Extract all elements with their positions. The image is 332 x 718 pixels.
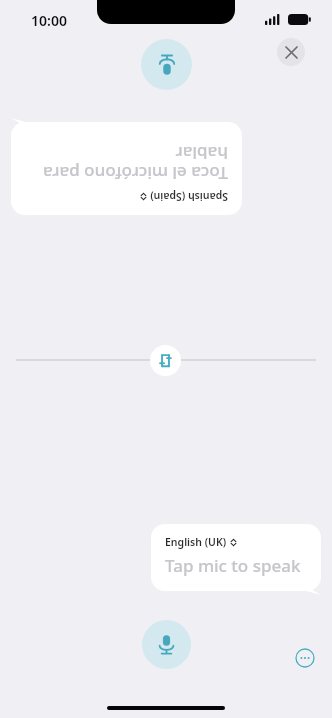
staticText: Spanish (Spain) bbox=[150, 190, 228, 204]
button[interactable]: English (UK) bbox=[165, 535, 237, 549]
staticText: 10:00 bbox=[31, 11, 67, 30]
button[interactable]: Close bbox=[277, 38, 305, 66]
button[interactable]: Speak Spanish bbox=[141, 39, 192, 90]
button[interactable]: Speak English bbox=[142, 620, 191, 669]
button[interactable]: Spanish (Spain) bbox=[140, 190, 228, 204]
button[interactable]: More options bbox=[293, 646, 317, 670]
staticText: Toca el micrófono para hablar bbox=[42, 142, 228, 185]
staticText: English (UK) bbox=[165, 535, 227, 549]
button[interactable]: Swap languages bbox=[150, 345, 181, 376]
staticText: Tap mic to speak bbox=[165, 554, 301, 577]
